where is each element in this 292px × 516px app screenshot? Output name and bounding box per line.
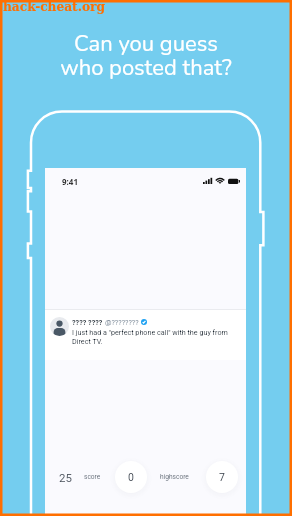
staticText: @????????	[105, 318, 139, 326]
staticText: Can you guess who posted that?	[0, 29, 292, 83]
staticText: hack-cheat.org	[3, 0, 106, 14]
staticText: I just had a "perfect phone call" with t…	[72, 328, 242, 346]
staticText: 0	[128, 471, 134, 483]
staticText: score	[84, 473, 101, 481]
button[interactable]: 25	[59, 471, 72, 484]
staticText: highscore	[160, 473, 189, 481]
button[interactable]: 0	[115, 461, 147, 493]
staticText: 9:41	[62, 176, 78, 187]
staticText: ???? ????	[72, 318, 103, 326]
staticText: 7	[219, 471, 225, 483]
button[interactable]: 7	[206, 461, 238, 493]
button[interactable]	[45, 310, 246, 360]
